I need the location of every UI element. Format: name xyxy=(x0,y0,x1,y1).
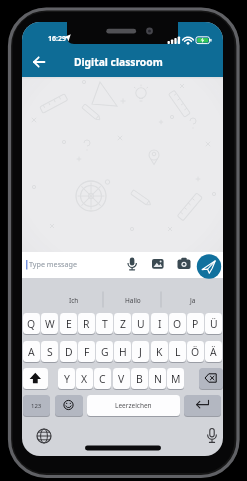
button[interactable]: D xyxy=(60,341,77,362)
staticText: Z xyxy=(120,317,126,331)
button[interactable]: F xyxy=(78,341,95,362)
button[interactable] xyxy=(22,252,223,278)
staticText: K xyxy=(156,345,163,359)
button[interactable]: X xyxy=(76,368,93,389)
staticText: N xyxy=(154,372,162,386)
button[interactable]: R xyxy=(78,313,95,334)
button[interactable]: Ä xyxy=(205,341,222,362)
staticText: D xyxy=(65,345,73,359)
staticText: Ä xyxy=(210,345,217,359)
button[interactable]: E xyxy=(60,313,77,334)
button[interactable] xyxy=(174,255,194,275)
button[interactable]: C xyxy=(94,368,111,389)
button[interactable]: H xyxy=(114,341,131,362)
button[interactable]: V xyxy=(113,368,130,389)
button[interactable]: 123 xyxy=(23,395,50,416)
staticText: P xyxy=(192,317,199,331)
staticText: Leerzeichen xyxy=(115,401,152,410)
button[interactable] xyxy=(184,395,221,416)
button[interactable]: G xyxy=(96,341,113,362)
button[interactable]: Ü xyxy=(205,313,222,334)
button[interactable]: Ich xyxy=(44,291,103,309)
button[interactable]: T xyxy=(96,313,113,334)
staticText: J xyxy=(139,345,142,359)
staticText: S xyxy=(47,345,53,359)
button[interactable] xyxy=(197,255,221,279)
staticText: L xyxy=(175,345,181,359)
staticText: Y xyxy=(64,372,70,386)
staticText: T xyxy=(102,317,108,331)
button[interactable]: M xyxy=(167,368,184,389)
button[interactable]: Ö xyxy=(187,341,204,362)
staticText: V xyxy=(118,372,125,386)
staticText: Ich xyxy=(69,296,79,305)
button[interactable] xyxy=(34,426,54,446)
staticText: Hallo xyxy=(125,296,141,305)
staticText: C xyxy=(99,372,106,386)
staticText: W xyxy=(45,317,55,331)
staticText: X xyxy=(81,372,88,386)
button[interactable]: J xyxy=(132,341,149,362)
staticText: A xyxy=(28,345,35,359)
button[interactable] xyxy=(122,255,142,275)
staticText: Ü xyxy=(210,317,218,331)
button[interactable] xyxy=(148,255,168,275)
staticText: E xyxy=(66,317,72,331)
button[interactable]: O xyxy=(169,313,186,334)
staticText: O xyxy=(173,317,182,331)
button[interactable]: Z xyxy=(114,313,131,334)
staticText: Digital classroom xyxy=(74,55,163,69)
staticText: R xyxy=(83,317,90,331)
staticText: Q xyxy=(27,317,36,331)
button[interactable]: I xyxy=(151,313,168,334)
button[interactable]: P xyxy=(187,313,204,334)
staticText: Ja xyxy=(190,296,196,305)
button[interactable]: K xyxy=(151,341,168,362)
staticText: 16:29 xyxy=(48,34,66,44)
button[interactable]: Hallo xyxy=(104,291,162,309)
staticText: B xyxy=(136,372,143,386)
button[interactable] xyxy=(199,368,223,389)
button[interactable]: L xyxy=(169,341,186,362)
staticText: F xyxy=(84,345,90,359)
button[interactable]: B xyxy=(131,368,148,389)
button[interactable] xyxy=(202,426,222,446)
staticText: 123 xyxy=(31,402,42,410)
staticText: Type message xyxy=(29,259,78,269)
button[interactable]: Q xyxy=(23,313,40,334)
staticText: H xyxy=(119,345,127,359)
staticText: U xyxy=(137,317,145,331)
staticText: G xyxy=(101,345,109,359)
button[interactable]: Ja xyxy=(162,291,223,309)
staticText: M xyxy=(171,372,181,386)
staticText: I xyxy=(158,317,162,331)
button[interactable]: W xyxy=(41,313,58,334)
button[interactable] xyxy=(55,395,83,416)
button[interactable] xyxy=(28,54,48,72)
button[interactable]: U xyxy=(132,313,149,334)
button[interactable]: N xyxy=(149,368,166,389)
staticText: Ö xyxy=(191,345,200,359)
button[interactable]: A xyxy=(23,341,40,362)
button[interactable] xyxy=(23,368,48,389)
button[interactable]: S xyxy=(41,341,58,362)
button[interactable]: Y xyxy=(58,368,75,389)
button[interactable]: Leerzeichen xyxy=(87,395,180,416)
